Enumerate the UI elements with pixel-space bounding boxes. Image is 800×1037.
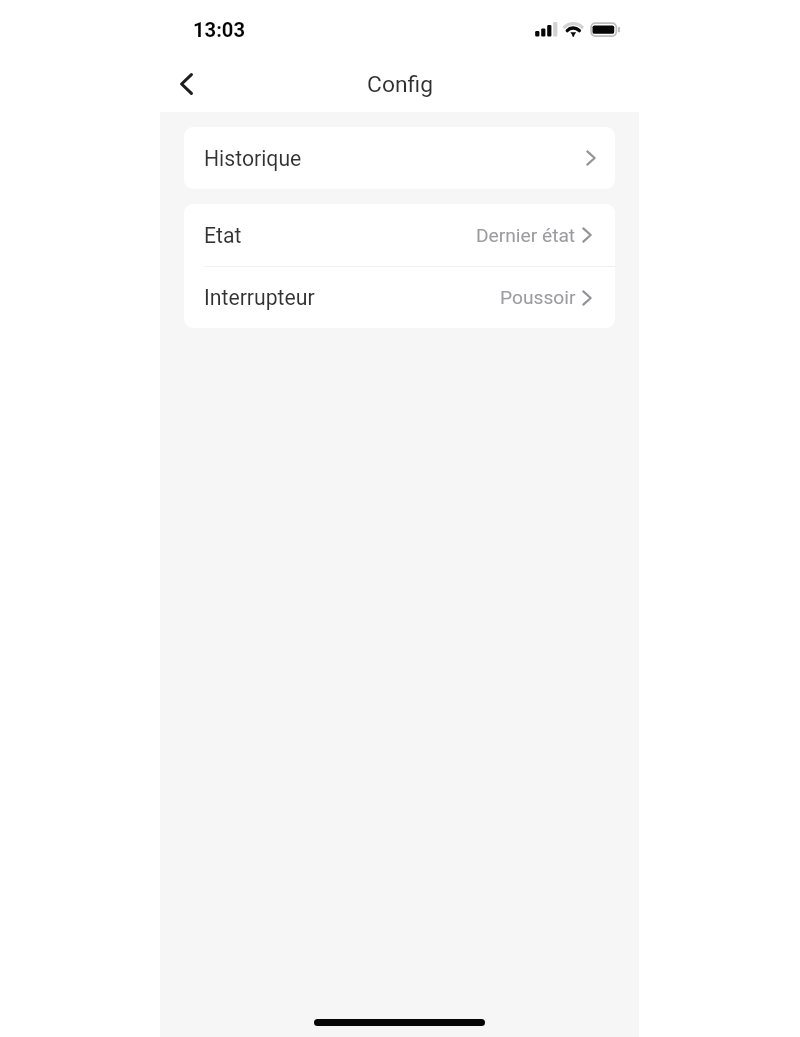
button[interactable]: Historique (184, 127, 615, 189)
staticText: Etat (204, 223, 242, 248)
staticText: Dernier état (476, 224, 576, 247)
staticText: Poussoir (500, 286, 576, 309)
staticText: 13:03 (193, 18, 246, 42)
button[interactable]: Interrupteur (184, 267, 615, 328)
staticText: Historique (204, 146, 302, 171)
staticText: Config (367, 71, 433, 98)
staticText: Interrupteur (204, 285, 315, 310)
button[interactable]: Etat (184, 204, 615, 266)
button[interactable]: Back (163, 61, 209, 107)
